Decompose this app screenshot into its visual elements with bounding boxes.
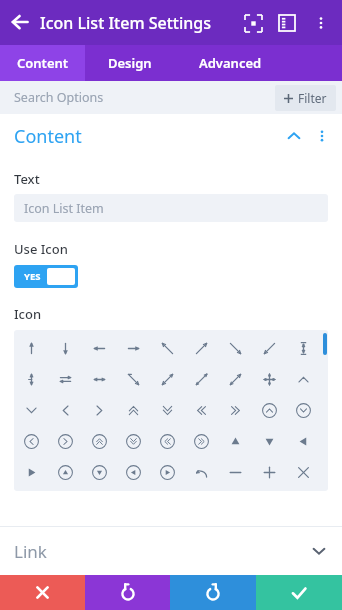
button[interactable]: CIRC_TRIRIGHT xyxy=(150,457,184,488)
button[interactable]: ARROW_H xyxy=(82,364,116,395)
staticText: Search Options xyxy=(14,89,104,106)
button[interactable]: YES xyxy=(14,265,78,288)
button[interactable]: MOVE4 xyxy=(252,364,286,395)
button[interactable]: TRI_LEFT xyxy=(286,426,320,457)
button[interactable]: Section options xyxy=(308,122,336,150)
button[interactable]: CHEV_UP xyxy=(286,364,320,395)
button[interactable]: CIRC_TRIDOWN xyxy=(82,457,116,488)
button[interactable]: Collapse section xyxy=(280,122,308,150)
button[interactable]: UNDO xyxy=(184,457,218,488)
staticText: Advanced xyxy=(199,54,262,72)
button[interactable]: CIRC_LEFT xyxy=(14,426,48,457)
button[interactable]: Advanced xyxy=(175,45,285,81)
button[interactable]: CHEV_LEFT xyxy=(48,395,82,426)
button[interactable]: SWAP_H xyxy=(48,364,82,395)
button[interactable]: DIAG_DR xyxy=(116,364,150,395)
staticText: Link xyxy=(14,540,47,563)
button[interactable]: UP xyxy=(14,333,48,364)
button[interactable]: Design xyxy=(85,45,175,81)
button[interactable]: DIAG_SHRINK xyxy=(184,364,218,395)
button[interactable]: UPDOWN_BAR xyxy=(286,333,320,364)
button[interactable]: UPDOWN_BAR2 xyxy=(14,364,48,395)
button[interactable]: CIRC_DBLUP xyxy=(82,426,116,457)
button[interactable]: TRI_UP xyxy=(218,426,252,457)
button[interactable]: TRI_DOWN xyxy=(252,426,286,457)
button[interactable]: DBL_UP xyxy=(116,395,150,426)
staticText: Icon List Item xyxy=(24,200,104,217)
button[interactable]: CIRC_DBLLEFT xyxy=(150,426,184,457)
button[interactable]: CIRC_RIGHT xyxy=(48,426,82,457)
staticText: Text xyxy=(14,170,40,188)
button[interactable]: TRI_RIGHT xyxy=(14,457,48,488)
staticText: Filter xyxy=(298,90,327,106)
button[interactable]: RIGHT xyxy=(116,333,150,364)
button[interactable]: DOWNLEFT xyxy=(252,333,286,364)
staticText: Icon List Item Settings xyxy=(40,12,211,34)
button[interactable]: Redo xyxy=(170,575,256,610)
button[interactable]: DIAG_EXP2 xyxy=(218,364,252,395)
button[interactable]: CIRC_TRIUP xyxy=(48,457,82,488)
button[interactable]: UPLEFT xyxy=(150,333,184,364)
button[interactable]: Back xyxy=(0,3,40,43)
button[interactable]: DOWNRIGHT xyxy=(218,333,252,364)
staticText: Use Icon xyxy=(14,240,68,258)
button[interactable]: CROSS xyxy=(286,457,320,488)
button[interactable]: PLUS xyxy=(252,457,286,488)
button[interactable]: Save xyxy=(256,575,342,610)
button[interactable]: Responsive preview xyxy=(236,6,270,40)
button[interactable]: Link xyxy=(0,527,342,575)
staticText: YES xyxy=(24,270,41,283)
button[interactable]: CIRC_DBLDOWN xyxy=(116,426,150,457)
staticText: Design xyxy=(108,54,152,72)
button[interactable]: UPRIGHT xyxy=(184,333,218,364)
button[interactable]: DIAG_EXP xyxy=(150,364,184,395)
button[interactable]: CIRC_TRILEFT xyxy=(116,457,150,488)
button[interactable]: More options xyxy=(304,6,338,40)
button[interactable]: LEFT xyxy=(82,333,116,364)
button[interactable]: Undo xyxy=(85,575,170,610)
button[interactable]: Content xyxy=(0,45,85,81)
button[interactable]: Icon List Item xyxy=(14,194,328,222)
button[interactable]: CIRC_DOWN xyxy=(286,395,320,426)
button[interactable]: DBL_DOWN xyxy=(150,395,184,426)
button[interactable]: CIRC_DBLRIGHT xyxy=(184,426,218,457)
button[interactable]: Layout panel xyxy=(270,6,304,40)
staticText: Content xyxy=(14,124,82,149)
button[interactable]: Discard xyxy=(0,575,85,610)
button[interactable]: CHEV_RIGHT xyxy=(82,395,116,426)
button[interactable]: DBL_LEFT xyxy=(184,395,218,426)
staticText: Content xyxy=(17,54,69,72)
staticText: Icon xyxy=(14,305,42,323)
button[interactable]: DBL_RIGHT xyxy=(218,395,252,426)
button[interactable]: CIRC_UP xyxy=(252,395,286,426)
button[interactable]: DOWN xyxy=(48,333,82,364)
button[interactable]: MINUS xyxy=(218,457,252,488)
button[interactable]: Filter xyxy=(275,85,336,111)
button[interactable]: CHEV_DOWN xyxy=(14,395,48,426)
